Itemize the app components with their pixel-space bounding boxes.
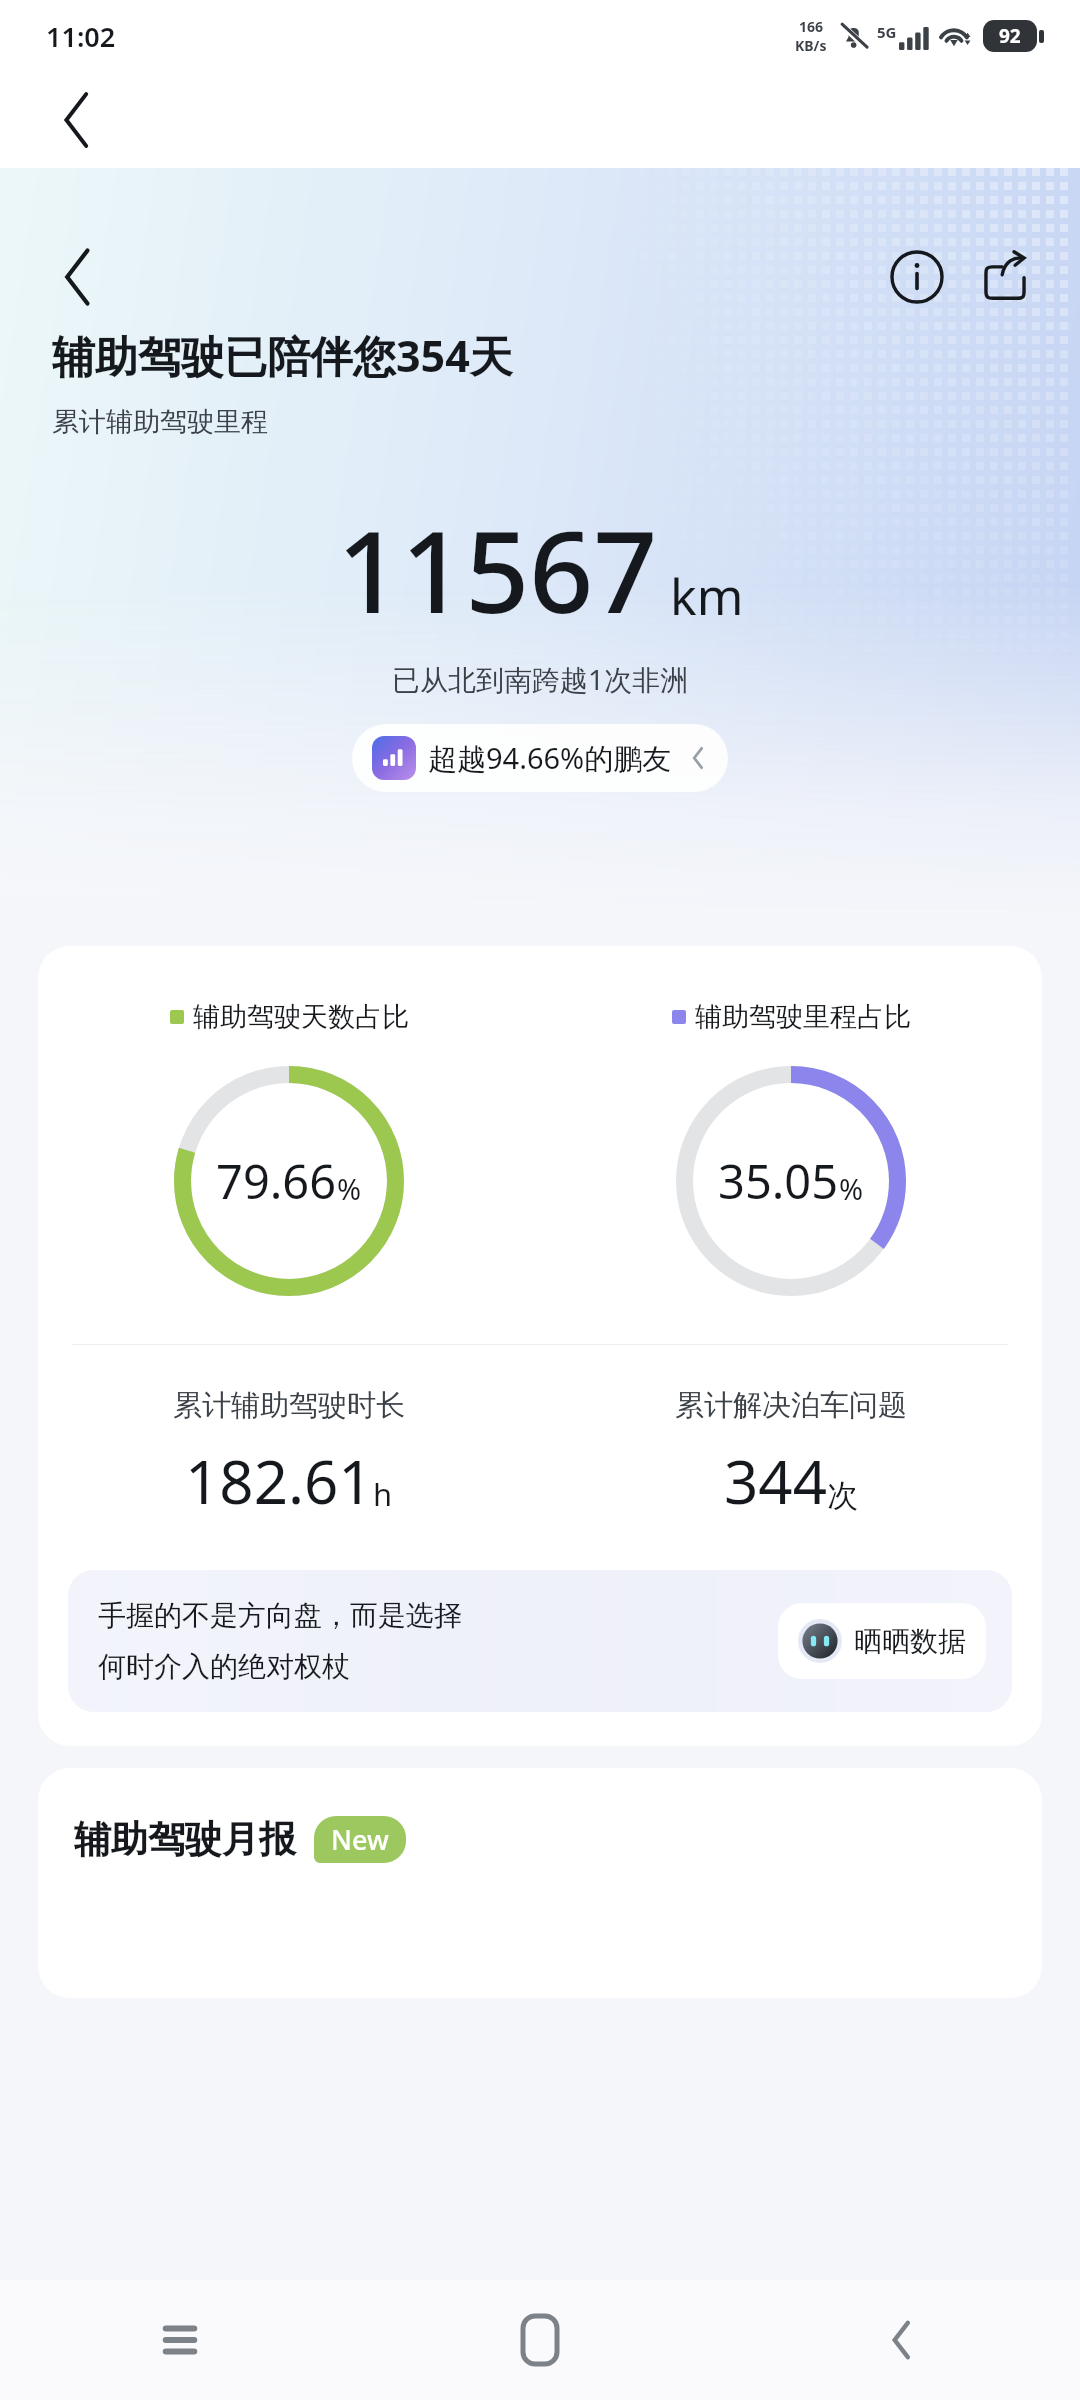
staticText: % [337,1169,362,1208]
staticText: 92 [999,23,1021,49]
staticText: 辅助驾驶里程占比 [695,1000,911,1034]
staticText: 11567 [337,493,658,646]
staticText: 手握的不是方向盘，而是选择 [98,1598,462,1633]
button[interactable]: 晒晒数据 [778,1603,986,1679]
staticText: 11:02 [46,18,116,55]
button[interactable]: 辅助驾驶月报 [38,1768,1042,1998]
staticText: km [670,562,744,630]
staticText: 累计解决泊车问题 [675,1387,907,1424]
staticText: 晒晒数据 [854,1624,966,1659]
staticText: 166 [799,17,824,36]
button[interactable]: Share [966,238,1044,316]
staticText: 35.05 [718,1149,839,1213]
button[interactable]: Back [720,2280,1080,2400]
staticText: 5G [877,22,897,42]
staticText: h [373,1473,393,1515]
staticText: 182.61 [185,1440,373,1522]
staticText: 累计辅助驾驶时长 [173,1387,405,1424]
button[interactable]: 超越94.66%的鹏友 [352,724,728,792]
staticText: 79.66 [216,1149,337,1213]
button[interactable]: Recents [0,2280,360,2400]
staticText: 344 [724,1440,827,1522]
staticText: KB/s [795,36,827,55]
button[interactable]: Info [878,238,956,316]
staticText: 累计辅助驾驶里程 [52,405,268,439]
staticText: 何时介入的绝对权杖 [98,1649,350,1684]
staticText: 辅助驾驶已陪伴您354天 [52,326,513,385]
button[interactable]: Back [36,82,112,158]
staticText: 辅助驾驶天数占比 [193,1000,409,1034]
staticText: New [331,1821,389,1858]
button[interactable]: Home [360,2280,720,2400]
staticText: % [839,1169,864,1208]
staticText: 超越94.66%的鹏友 [428,738,672,778]
staticText: 已从北到南跨越1次非洲 [0,660,1080,698]
staticText: 次 [827,1476,858,1515]
staticText: 辅助驾驶月报 [74,1816,296,1863]
button[interactable]: Back [36,238,114,316]
